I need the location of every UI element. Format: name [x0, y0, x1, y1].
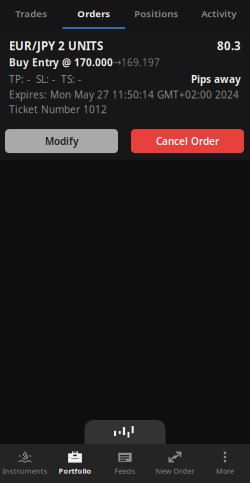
button[interactable]: Instruments	[0, 444, 50, 483]
button[interactable]: Activity	[187, 0, 250, 29]
staticText: Feeds	[114, 466, 135, 476]
button[interactable]: Trades	[0, 0, 62, 29]
button[interactable]: Modify	[5, 129, 118, 153]
staticText: Activity	[201, 7, 236, 20]
staticText: Buy Entry @ 170.000	[9, 56, 113, 69]
button[interactable]: Feeds	[100, 444, 150, 483]
staticText: Positions	[134, 7, 178, 20]
staticText: Modify	[45, 134, 78, 148]
staticText: 80.3	[217, 38, 241, 54]
button[interactable]: Orders	[62, 0, 125, 29]
staticText: Portfolio	[58, 466, 91, 476]
staticText: Expires: Mon May 27 11:50:14 GMT+02:00 2…	[9, 88, 239, 101]
staticText: Orders	[77, 7, 110, 20]
staticText: →	[113, 57, 121, 68]
button[interactable]: Portfolio	[50, 444, 100, 483]
staticText: Cancel Order	[156, 134, 219, 148]
staticText: Ticket Number 1012	[9, 102, 107, 116]
staticText: More	[216, 466, 234, 476]
button[interactable]: Cancel Order	[131, 129, 244, 153]
button[interactable]: More	[200, 444, 250, 483]
staticText: EUR/JPY 2 UNITS	[9, 38, 103, 54]
staticText: 169.197	[121, 56, 160, 69]
button[interactable]: New Order	[150, 444, 200, 483]
button[interactable]: Positions	[125, 0, 187, 29]
staticText: TP: - SL: - TS: -	[9, 72, 81, 86]
button[interactable]: Chart	[84, 420, 165, 452]
staticText: Pips away	[191, 72, 241, 86]
staticText: Instruments	[2, 466, 47, 476]
staticText: New Order	[155, 466, 194, 476]
staticText: Trades	[15, 7, 47, 20]
